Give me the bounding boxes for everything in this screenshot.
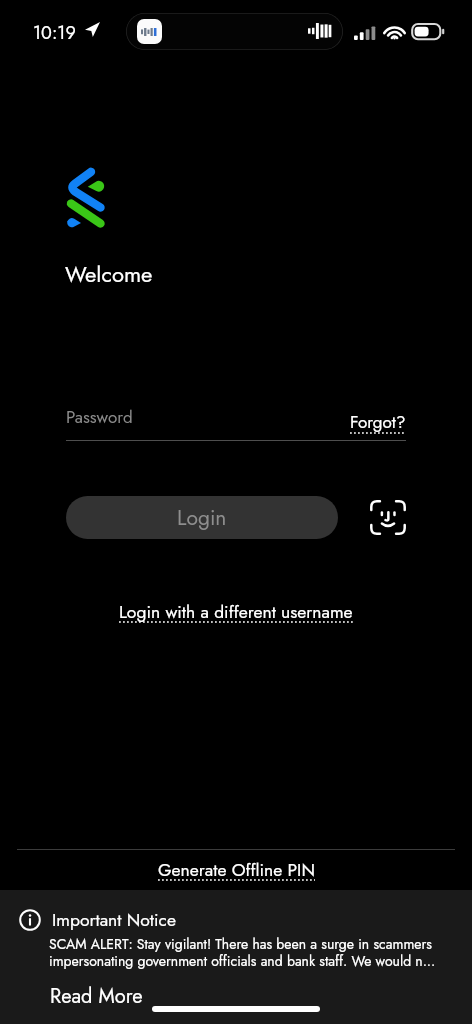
button[interactable]: Login: [66, 496, 338, 539]
button[interactable]: Read More: [50, 982, 143, 1011]
staticText: Generate Offline PIN: [158, 857, 315, 882]
button[interactable]: Login with a different username: [0, 593, 472, 629]
staticText: Welcome: [65, 258, 153, 290]
button[interactable]: Forgot?: [345, 404, 406, 444]
staticText: Password: [66, 405, 133, 430]
staticText: Important Notice: [52, 907, 176, 932]
staticText: SCAM ALERT: Stay vigilant! There has bee…: [49, 934, 448, 971]
button[interactable]: Generate Offline PIN: [0, 851, 472, 887]
staticText: Read More: [50, 982, 143, 1011]
button[interactable]: Information: [19, 909, 42, 932]
button[interactable]: Log in with Face ID: [366, 496, 410, 539]
staticText: Forgot?: [350, 410, 406, 435]
staticText: Login with a different username: [119, 599, 353, 624]
staticText: Login: [177, 503, 227, 533]
staticText: 10:19: [33, 20, 76, 46]
